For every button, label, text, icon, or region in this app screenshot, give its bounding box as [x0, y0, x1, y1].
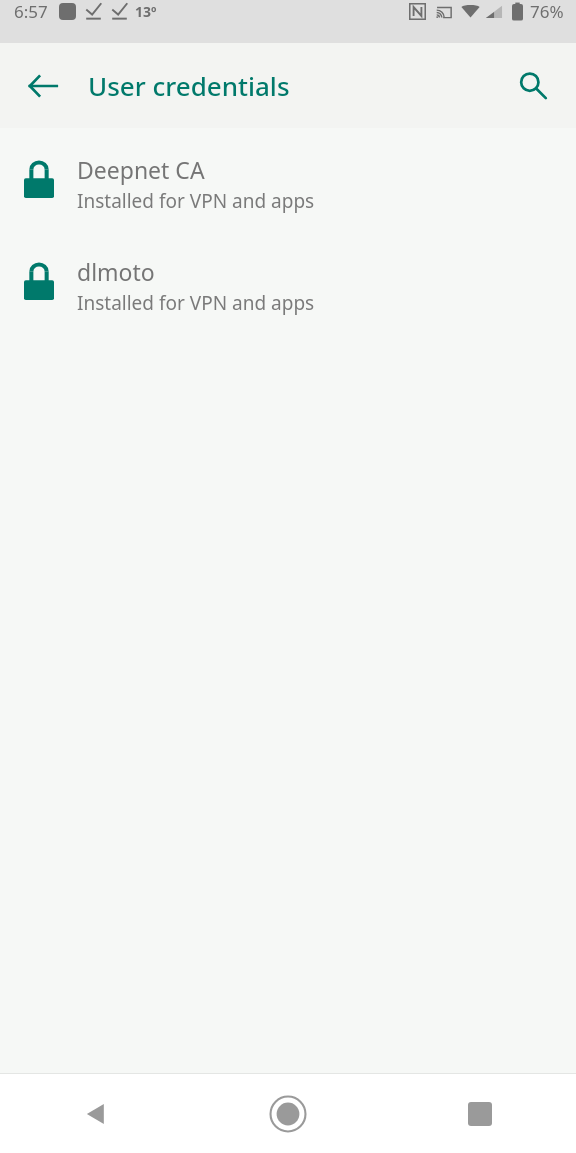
staticText: Installed for VPN and apps	[77, 290, 315, 316]
button[interactable]: Recent apps	[442, 1076, 518, 1152]
staticText: User credentials	[88, 68, 290, 103]
staticText: 76%	[530, 0, 564, 23]
staticText: 6:57	[14, 0, 48, 23]
staticText: Deepnet CA	[77, 154, 205, 185]
button[interactable]: Navigate up	[14, 57, 72, 115]
button[interactable]: Home	[250, 1076, 326, 1152]
button[interactable]: Deepnet CA	[0, 148, 576, 220]
button[interactable]: dlmoto	[0, 250, 576, 322]
button[interactable]: Search	[504, 57, 562, 115]
button[interactable]: Back	[58, 1076, 134, 1152]
staticText: dlmoto	[77, 256, 155, 287]
staticText: Installed for VPN and apps	[77, 188, 315, 214]
staticText: 13º	[135, 2, 157, 21]
